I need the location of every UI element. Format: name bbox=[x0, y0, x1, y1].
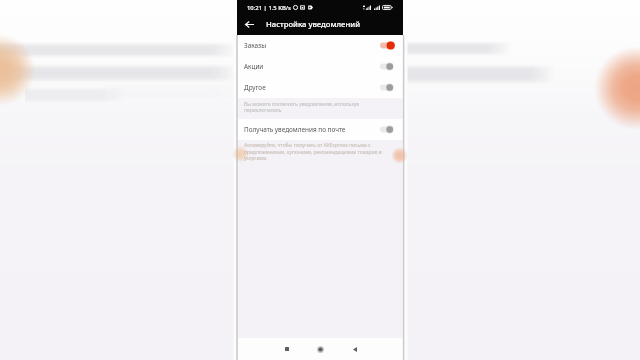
staticText: Получать уведомления по почте bbox=[244, 125, 346, 134]
button[interactable]: Back bbox=[346, 339, 363, 359]
staticText: 10:21 | 1.5 KB/s bbox=[247, 4, 291, 12]
button[interactable]: Back bbox=[240, 15, 258, 33]
button[interactable]: Другое bbox=[237, 77, 403, 98]
staticText: Вы можете отключить уведомления, использ… bbox=[244, 101, 360, 114]
staticText: Заказы bbox=[244, 41, 267, 50]
button[interactable]: Recent apps bbox=[278, 339, 295, 359]
button[interactable]: Получать уведомления по почте bbox=[237, 119, 403, 140]
staticText: Другое bbox=[244, 83, 266, 92]
button[interactable]: Заказы bbox=[237, 35, 403, 56]
staticText: Активируйте, чтобы получать от AliExpres… bbox=[244, 142, 382, 161]
staticText: Настройка уведомлений bbox=[266, 19, 361, 29]
button[interactable]: Акции bbox=[237, 56, 403, 77]
staticText: Акции bbox=[244, 62, 264, 71]
button[interactable]: Home bbox=[312, 339, 329, 359]
